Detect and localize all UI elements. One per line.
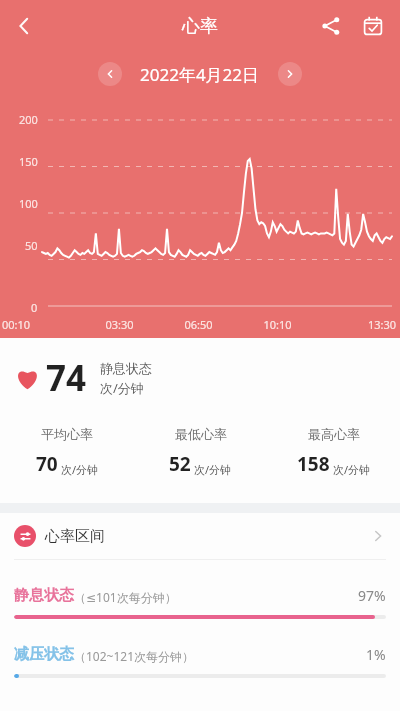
staticText: 次/分钟 <box>194 462 232 477</box>
staticText: 心率区间 <box>45 527 105 546</box>
button[interactable]: Previous day <box>98 62 122 86</box>
staticText: 平均心率 <box>41 426 93 442</box>
staticText: 70 <box>36 451 58 477</box>
staticText: 10:10 <box>238 317 317 332</box>
staticText: 次/分钟 <box>61 462 99 477</box>
staticText: 静息状态 <box>100 360 152 376</box>
staticText: 06:50 <box>159 317 238 332</box>
staticText: 次/分钟 <box>100 379 144 397</box>
staticText: 心率 <box>182 15 218 38</box>
staticText: 最高心率 <box>308 426 360 442</box>
staticText: 2022年4月22日 <box>140 63 260 86</box>
staticText: 200 <box>19 112 38 127</box>
staticText: 97% <box>358 586 386 605</box>
staticText: 150 <box>19 154 38 169</box>
staticText: 1% <box>366 645 386 664</box>
staticText: 52 <box>169 451 191 477</box>
staticText: 减压状态 <box>14 645 74 664</box>
button[interactable]: Calendar <box>352 5 394 47</box>
staticText: 158 <box>297 451 330 477</box>
staticText: 03:30 <box>80 317 159 332</box>
button[interactable]: Next day <box>278 62 302 86</box>
button[interactable]: Back <box>2 4 46 48</box>
staticText: 50 <box>25 238 38 253</box>
staticText: 0 <box>31 300 38 315</box>
staticText: 13:30 <box>317 317 396 332</box>
staticText: （≤101次每分钟） <box>74 589 177 605</box>
staticText: 最低心率 <box>175 426 227 442</box>
button[interactable]: Share <box>310 5 352 47</box>
staticText: 静息状态 <box>14 586 74 605</box>
staticText: 100 <box>19 196 38 211</box>
button[interactable]: 心率区间 <box>0 513 400 559</box>
staticText: （102~121次每分钟） <box>74 648 195 664</box>
staticText: 74 <box>46 354 87 402</box>
staticText: 次/分钟 <box>333 462 371 477</box>
staticText: 00:10 <box>2 317 80 332</box>
